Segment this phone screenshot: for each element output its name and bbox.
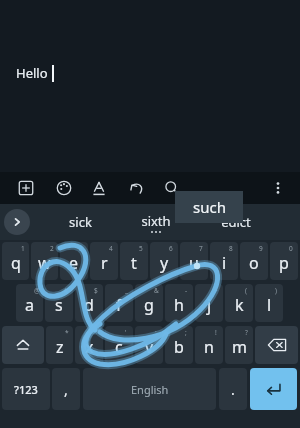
staticText: m [232, 336, 247, 358]
button[interactable]: sixth [118, 204, 194, 240]
button[interactable]: @ [16, 284, 43, 322]
button[interactable]: Expand toolbar [4, 209, 30, 235]
button[interactable]: More options [264, 174, 292, 202]
staticText: e [69, 252, 79, 274]
staticText: ! [215, 328, 217, 337]
button[interactable]: 5 [120, 242, 148, 280]
button[interactable]: Search [158, 174, 186, 202]
staticText: edict [221, 213, 251, 231]
staticText: x [85, 336, 94, 358]
staticText: r [101, 252, 108, 274]
staticText: k [235, 294, 244, 316]
staticText: h [174, 294, 184, 316]
button[interactable]: " [75, 326, 103, 364]
staticText: # [64, 286, 69, 295]
button[interactable]: Enter [250, 368, 297, 410]
staticText: sick [69, 213, 92, 231]
staticText: - [185, 286, 188, 295]
button[interactable]: 4 [90, 242, 118, 280]
button[interactable]: * [46, 326, 73, 364]
staticText: @ [34, 286, 40, 295]
staticText: Hello [16, 64, 48, 82]
staticText: p [279, 252, 289, 274]
button[interactable]: 0 [270, 242, 298, 280]
button[interactable]: 2 [31, 242, 58, 280]
button[interactable]: edict [198, 204, 274, 240]
button[interactable]: Text format [85, 174, 113, 202]
staticText: + [214, 286, 218, 295]
staticText: i [222, 252, 227, 274]
staticText: g [144, 294, 154, 316]
button[interactable]: ( [225, 284, 253, 322]
staticText: 1 [21, 244, 25, 253]
staticText: o [249, 252, 259, 274]
button[interactable]: & [135, 284, 163, 322]
staticText: ( [245, 286, 247, 295]
button[interactable]: ?123 [2, 368, 50, 410]
button[interactable]: ) [255, 284, 283, 322]
button[interactable]: Hello [0, 0, 300, 172]
staticText: t [131, 252, 137, 274]
staticText: ) [275, 286, 277, 295]
staticText: * [65, 328, 69, 337]
button[interactable]: : [135, 326, 163, 364]
staticText: 7 [199, 244, 203, 253]
staticText: q [11, 252, 21, 274]
button[interactable]: Add [12, 174, 40, 202]
staticText: f [116, 294, 122, 316]
staticText: a [25, 294, 34, 316]
staticText: u [189, 252, 199, 274]
button[interactable]: 7 [180, 242, 208, 280]
staticText: w [38, 252, 51, 274]
staticText: ; [185, 328, 187, 337]
staticText: sixth [141, 212, 171, 230]
button[interactable]: _ [105, 284, 133, 322]
button[interactable]: ? [225, 326, 253, 364]
staticText: b [174, 336, 184, 358]
staticText: . [231, 380, 235, 399]
button[interactable]: such [175, 191, 243, 223]
staticText: n [204, 336, 214, 358]
button[interactable]: , [52, 368, 80, 410]
staticText: English [131, 382, 169, 397]
staticText: 3 [79, 244, 83, 253]
button[interactable]: 1 [2, 242, 29, 280]
staticText: 4 [109, 244, 113, 253]
button[interactable]: $ [75, 284, 103, 322]
staticText: c [115, 336, 123, 358]
staticText: ' [125, 328, 127, 337]
staticText: & [154, 286, 159, 295]
button[interactable]: - [165, 284, 193, 322]
button[interactable]: Backspace [255, 326, 298, 364]
button[interactable]: 9 [240, 242, 268, 280]
staticText: ?123 [14, 382, 38, 397]
button[interactable]: 8 [210, 242, 238, 280]
button[interactable]: ' [105, 326, 133, 364]
staticText: s [55, 294, 63, 316]
button[interactable]: . [219, 368, 247, 410]
staticText: 0 [289, 244, 293, 253]
staticText: d [84, 294, 94, 316]
staticText: : [155, 328, 157, 337]
button[interactable]: 3 [60, 242, 88, 280]
button[interactable]: Theme [50, 174, 78, 202]
button[interactable]: ! [195, 326, 223, 364]
staticText: v [145, 336, 154, 358]
button[interactable]: ; [165, 326, 193, 364]
button[interactable]: + [195, 284, 223, 322]
staticText: z [56, 336, 64, 358]
staticText: such [193, 197, 226, 217]
button[interactable]: sick [40, 204, 120, 240]
staticText: j [207, 294, 212, 316]
staticText: y [160, 252, 169, 274]
button[interactable]: # [45, 284, 73, 322]
staticText: 8 [229, 244, 233, 253]
button[interactable]: Shift [2, 326, 44, 364]
button[interactable]: 6 [150, 242, 178, 280]
staticText: _ [125, 286, 128, 295]
button[interactable]: English [83, 368, 216, 410]
staticText: " [95, 328, 98, 337]
button[interactable]: Undo [123, 174, 151, 202]
staticText: 2 [50, 244, 54, 253]
staticText: 5 [139, 244, 143, 253]
